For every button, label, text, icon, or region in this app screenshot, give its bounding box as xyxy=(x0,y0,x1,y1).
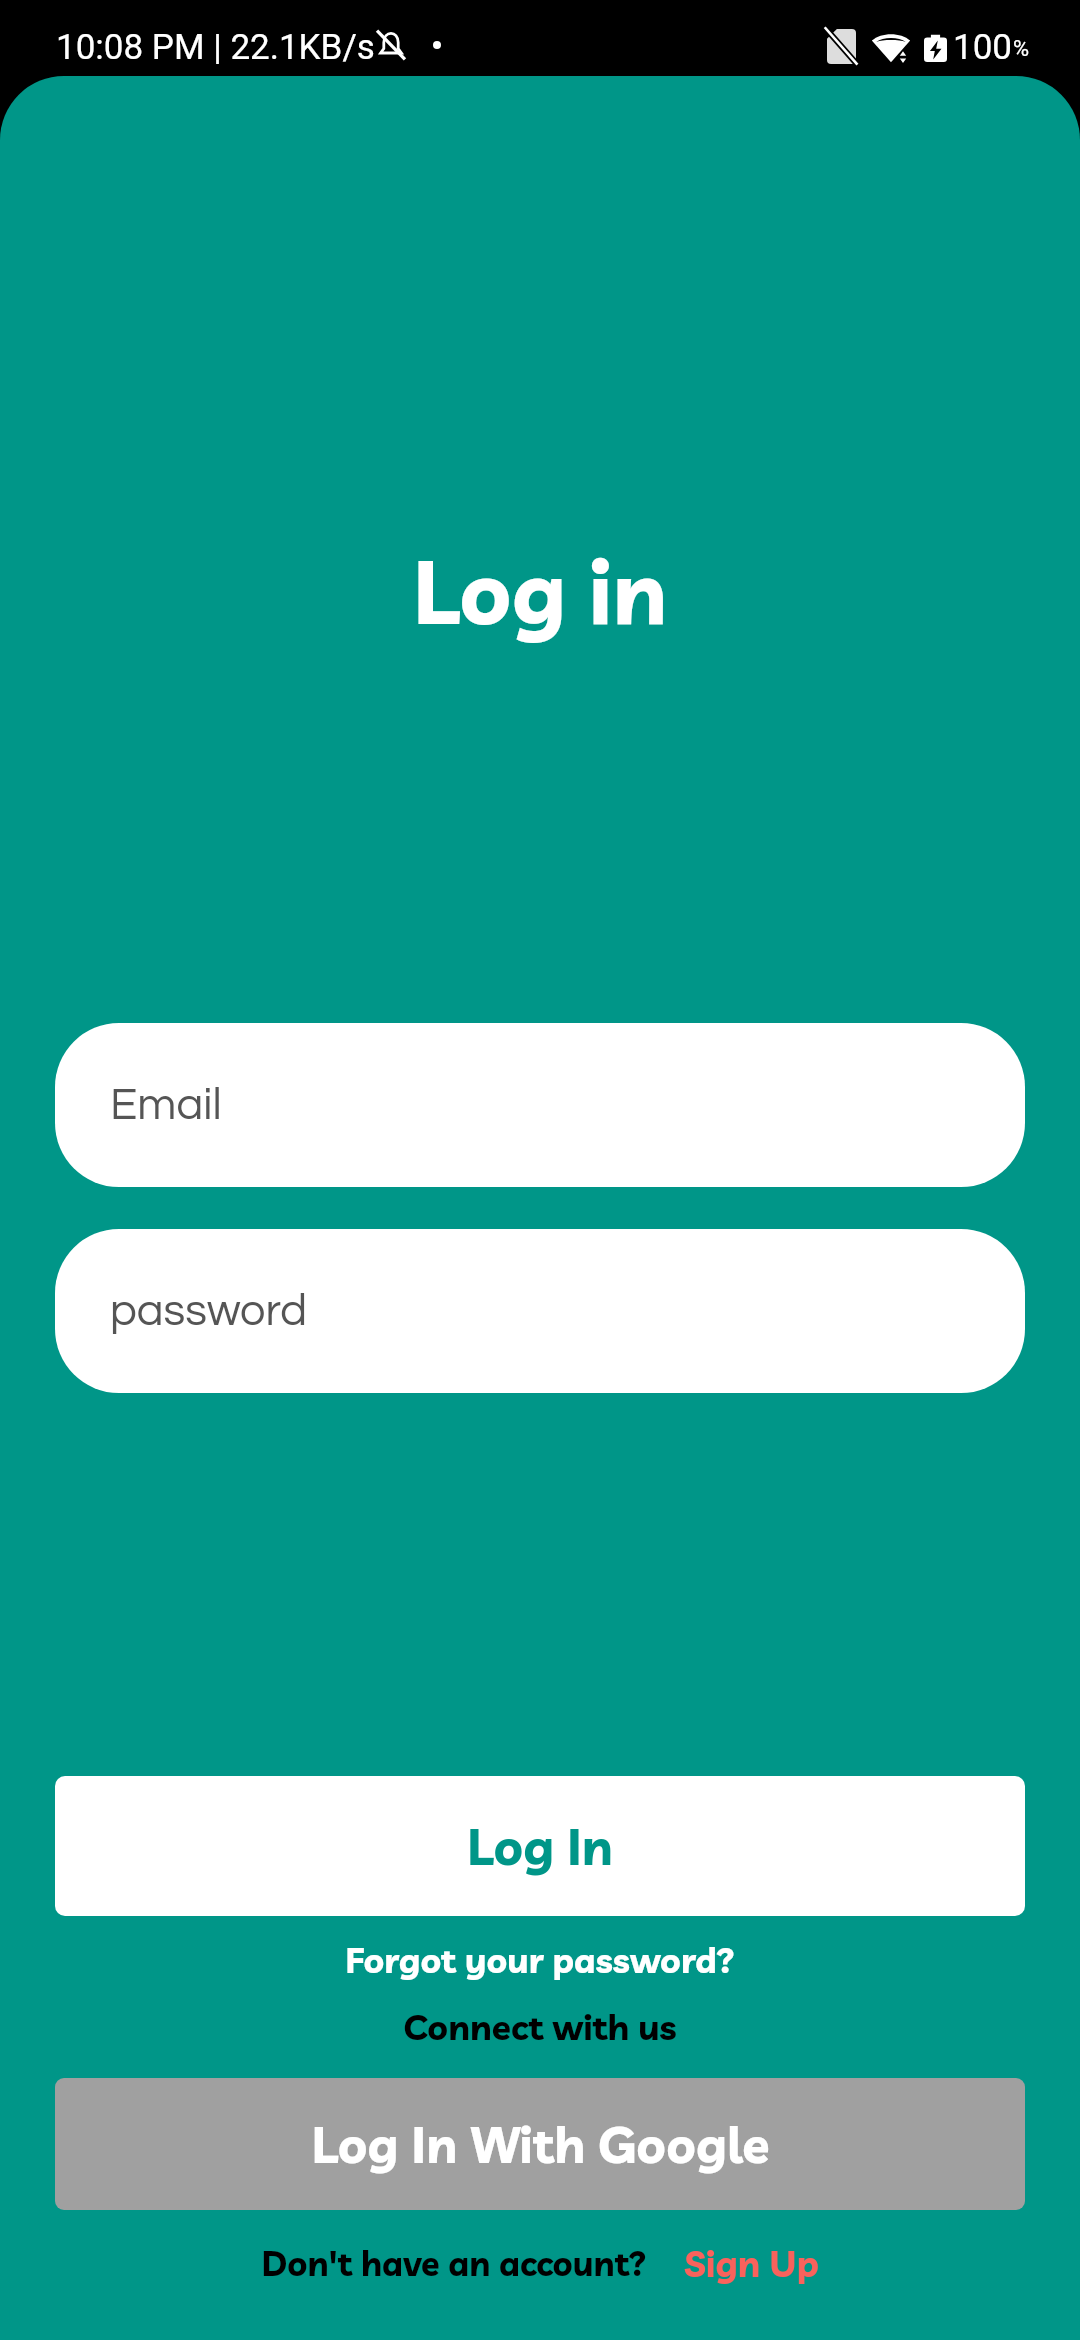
staticText: % xyxy=(1013,36,1030,62)
staticText: password xyxy=(110,1288,308,1334)
button[interactable]: Log In xyxy=(55,1776,1025,1916)
staticText: Log In xyxy=(467,1815,613,1878)
button[interactable]: password xyxy=(55,1229,1025,1393)
staticText: Log In With Google xyxy=(311,2113,770,2176)
staticText: 10:08 PM | 22.1KB/s xyxy=(56,27,375,68)
staticText: Connect with us xyxy=(0,2005,1080,2049)
other: No SIM card xyxy=(827,29,856,64)
other: Notifications silenced xyxy=(371,25,411,65)
button[interactable]: Forgot your password? xyxy=(0,1938,1080,1982)
other: Wi-Fi xyxy=(871,32,911,65)
button[interactable]: Sign Up xyxy=(684,2241,819,2286)
staticText: Log in xyxy=(0,536,1080,646)
button[interactable]: Log In With Google xyxy=(55,2078,1025,2210)
button[interactable]: Email xyxy=(55,1023,1025,1187)
staticText: Don't have an account? xyxy=(261,2242,647,2285)
other: Battery charging, 100 percent xyxy=(924,32,947,66)
staticText: 100 xyxy=(953,27,1013,68)
staticText: Email xyxy=(110,1082,222,1128)
